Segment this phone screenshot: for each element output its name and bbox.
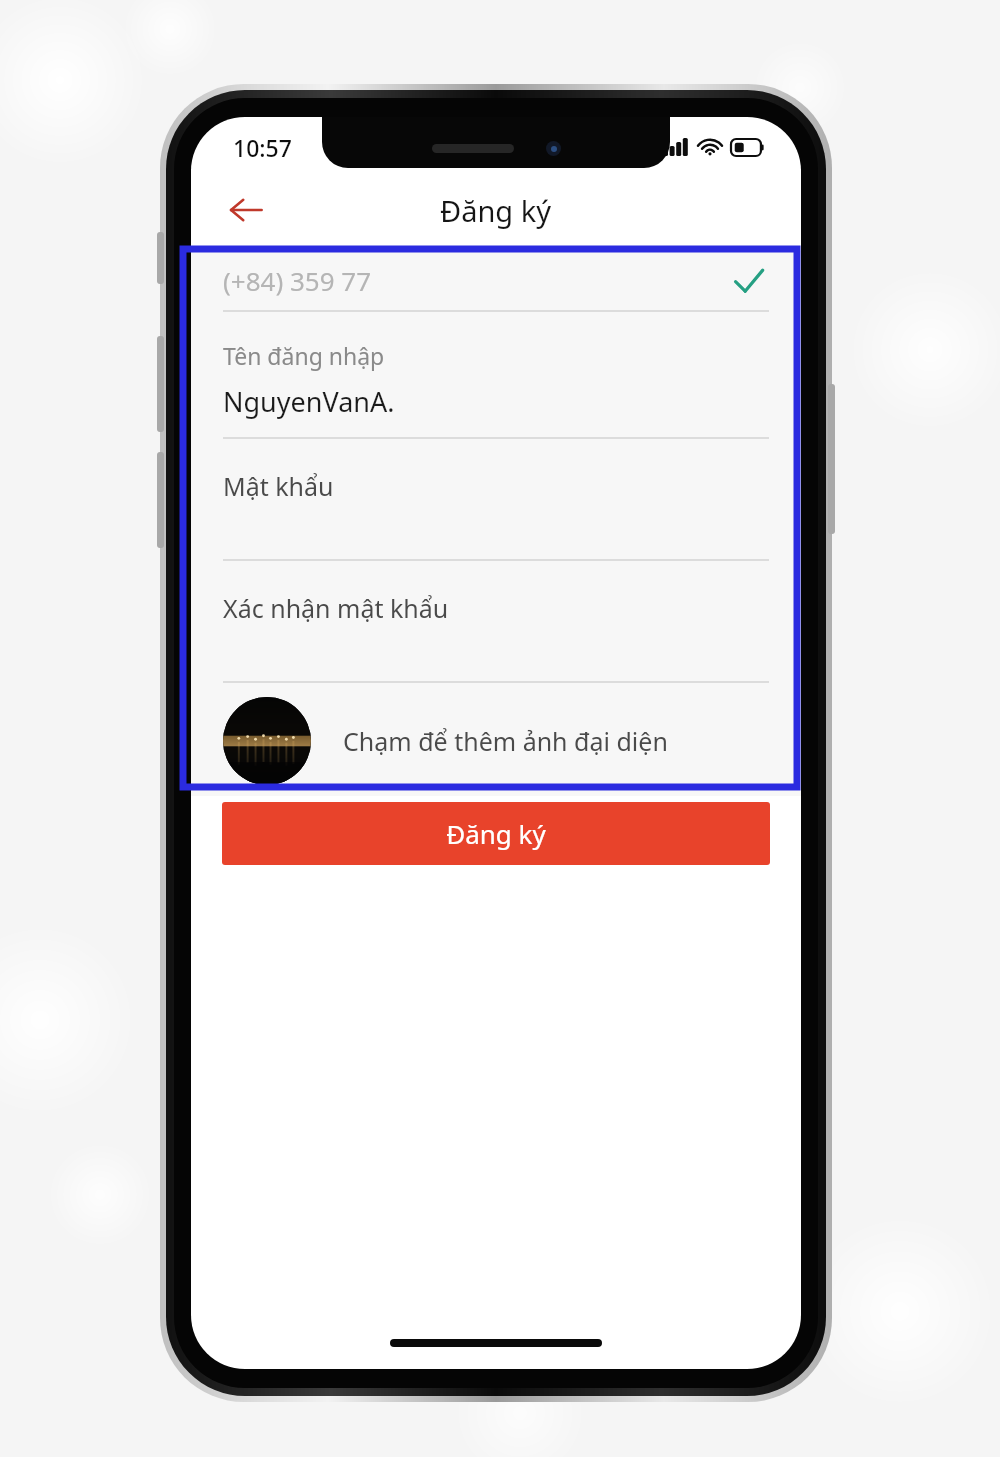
button[interactable]: Tên đăng nhập — [223, 340, 769, 437]
staticText: (+84) 359 77 — [223, 263, 372, 298]
button[interactable]: Đăng ký — [222, 802, 770, 865]
button[interactable]: Chạm để thêm ảnh đại diện — [223, 697, 769, 785]
staticText: Đăng ký — [446, 816, 546, 851]
staticText: Mật khẩu — [223, 469, 334, 503]
button[interactable]: Back — [217, 181, 275, 239]
staticText: 10:57 — [233, 132, 292, 163]
button[interactable]: (+84) 359 77 — [223, 251, 769, 310]
button[interactable]: Mật khẩu — [223, 469, 769, 559]
button[interactable]: Xác nhận mật khẩu — [223, 591, 769, 681]
staticText: Chạm để thêm ảnh đại diện — [343, 724, 668, 758]
staticText: Đăng ký — [440, 191, 552, 230]
staticText: NguyenVanA. — [223, 383, 395, 420]
staticText: Tên đăng nhập — [223, 340, 385, 371]
staticText: Xác nhận mật khẩu — [223, 591, 449, 625]
